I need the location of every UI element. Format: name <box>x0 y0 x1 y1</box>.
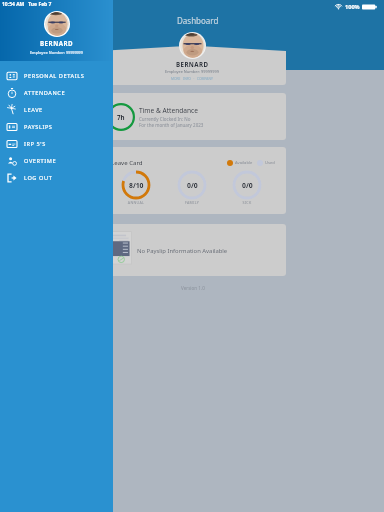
button[interactable]: PAYSLIPS <box>0 118 113 135</box>
button[interactable]: IRP 5'S <box>0 135 113 152</box>
button[interactable]: 7h <box>98 93 286 140</box>
button[interactable]: LEAVE <box>0 101 113 118</box>
button[interactable]: ATTENDANCE <box>0 84 113 101</box>
button[interactable]: LOG OUT <box>0 169 113 186</box>
staticText: Currently Clocked In: No <box>139 116 191 122</box>
button[interactable]: PERSONAL DETAILS <box>0 67 113 84</box>
other: Status <box>334 2 377 12</box>
staticText: BERNARD <box>176 60 209 68</box>
staticText: No Payslip Information Available <box>137 247 228 255</box>
staticText: Leave Card <box>111 158 143 166</box>
staticText: 0/0 <box>187 181 198 190</box>
staticText: SICK <box>227 200 267 205</box>
staticText: BERNARD <box>40 39 74 47</box>
staticText: ATTENDANCE <box>24 89 66 97</box>
staticText: FAMILY <box>172 200 212 205</box>
staticText: 10:54 AM Tue Feb 7 <box>2 1 52 8</box>
button[interactable]: Leave Card <box>98 147 286 214</box>
staticText: 100% <box>345 3 360 11</box>
staticText: PERSONAL DETAILS <box>24 72 85 80</box>
button[interactable]: OVERTIME <box>0 152 113 169</box>
button[interactable]: No Payslip Information Available <box>98 224 286 276</box>
staticText: Employee Number: 99999999 <box>30 50 83 55</box>
staticText: MORE INFO · COMPANY <box>171 76 213 80</box>
staticText: Employee Number: 99999999 <box>165 69 219 74</box>
staticText: LOG OUT <box>24 174 53 182</box>
staticText: 0/0 <box>242 181 253 190</box>
staticText: PAYSLIPS <box>24 123 53 131</box>
staticText: Time & Attendance <box>139 106 198 115</box>
staticText: For the month of January 2023 <box>139 122 204 128</box>
staticText: ANNUAL <box>116 200 156 205</box>
staticText: Dashboard <box>177 15 219 26</box>
staticText: 7h <box>117 113 125 121</box>
staticText: Version 1.0 <box>181 285 205 291</box>
staticText: LEAVE <box>24 106 43 114</box>
staticText: 8/10 <box>129 181 144 190</box>
staticText: Available <box>235 160 253 166</box>
staticText: IRP 5'S <box>24 140 46 148</box>
staticText: Used <box>265 160 275 166</box>
staticText: OVERTIME <box>24 157 57 165</box>
